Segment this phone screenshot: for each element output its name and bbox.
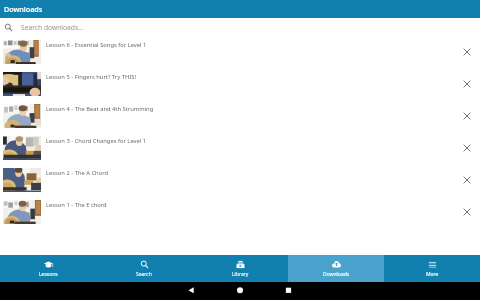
- button[interactable]: Lessons: [0, 255, 96, 282]
- button[interactable]: Lesson 2 - The A Chord: [0, 164, 480, 196]
- button[interactable]: Lesson 1 - The E chord: [0, 196, 480, 228]
- staticText: Search downloads...: [21, 23, 84, 32]
- staticText: Lesson 6 - Essential Songs for Level 1: [46, 41, 147, 49]
- staticText: Lesson 4 - The Beat and 4th Strumming: [46, 105, 154, 113]
- staticText: Lesson 5 - Fingers hurt? Try THIS!: [46, 73, 136, 81]
- button[interactable]: Lesson 5 - Fingers hurt? Try THIS!: [0, 68, 480, 100]
- staticText: Library: [232, 271, 249, 278]
- button[interactable]: More: [384, 255, 480, 282]
- staticText: Downloads: [4, 4, 43, 14]
- staticText: Lesson 1 - The E chord: [46, 201, 107, 209]
- staticText: Lessons: [39, 271, 58, 278]
- button[interactable]: Lesson 4 - The Beat and 4th Strumming: [0, 100, 480, 132]
- button[interactable]: Downloads: [288, 255, 384, 282]
- staticText: Lesson 3 - Chord Changes for Level 1: [46, 137, 147, 145]
- button[interactable]: Remove download: [455, 200, 479, 224]
- button[interactable]: Remove download: [455, 136, 479, 160]
- staticText: Lesson 2 - The A Chord: [46, 169, 109, 177]
- staticText: More: [426, 271, 439, 278]
- staticText: Search: [136, 271, 152, 278]
- button[interactable]: Remove download: [455, 40, 479, 64]
- staticText: Downloads: [323, 271, 350, 278]
- button[interactable]: Search downloads...: [0, 18, 480, 36]
- button[interactable]: Remove download: [455, 72, 479, 96]
- button[interactable]: Remove download: [455, 168, 479, 192]
- button[interactable]: Lesson 3 - Chord Changes for Level 1: [0, 132, 480, 164]
- button[interactable]: Library: [192, 255, 288, 282]
- button[interactable]: Search: [96, 255, 192, 282]
- button[interactable]: Remove download: [455, 104, 479, 128]
- button[interactable]: Lesson 6 - Essential Songs for Level 1: [0, 36, 480, 68]
